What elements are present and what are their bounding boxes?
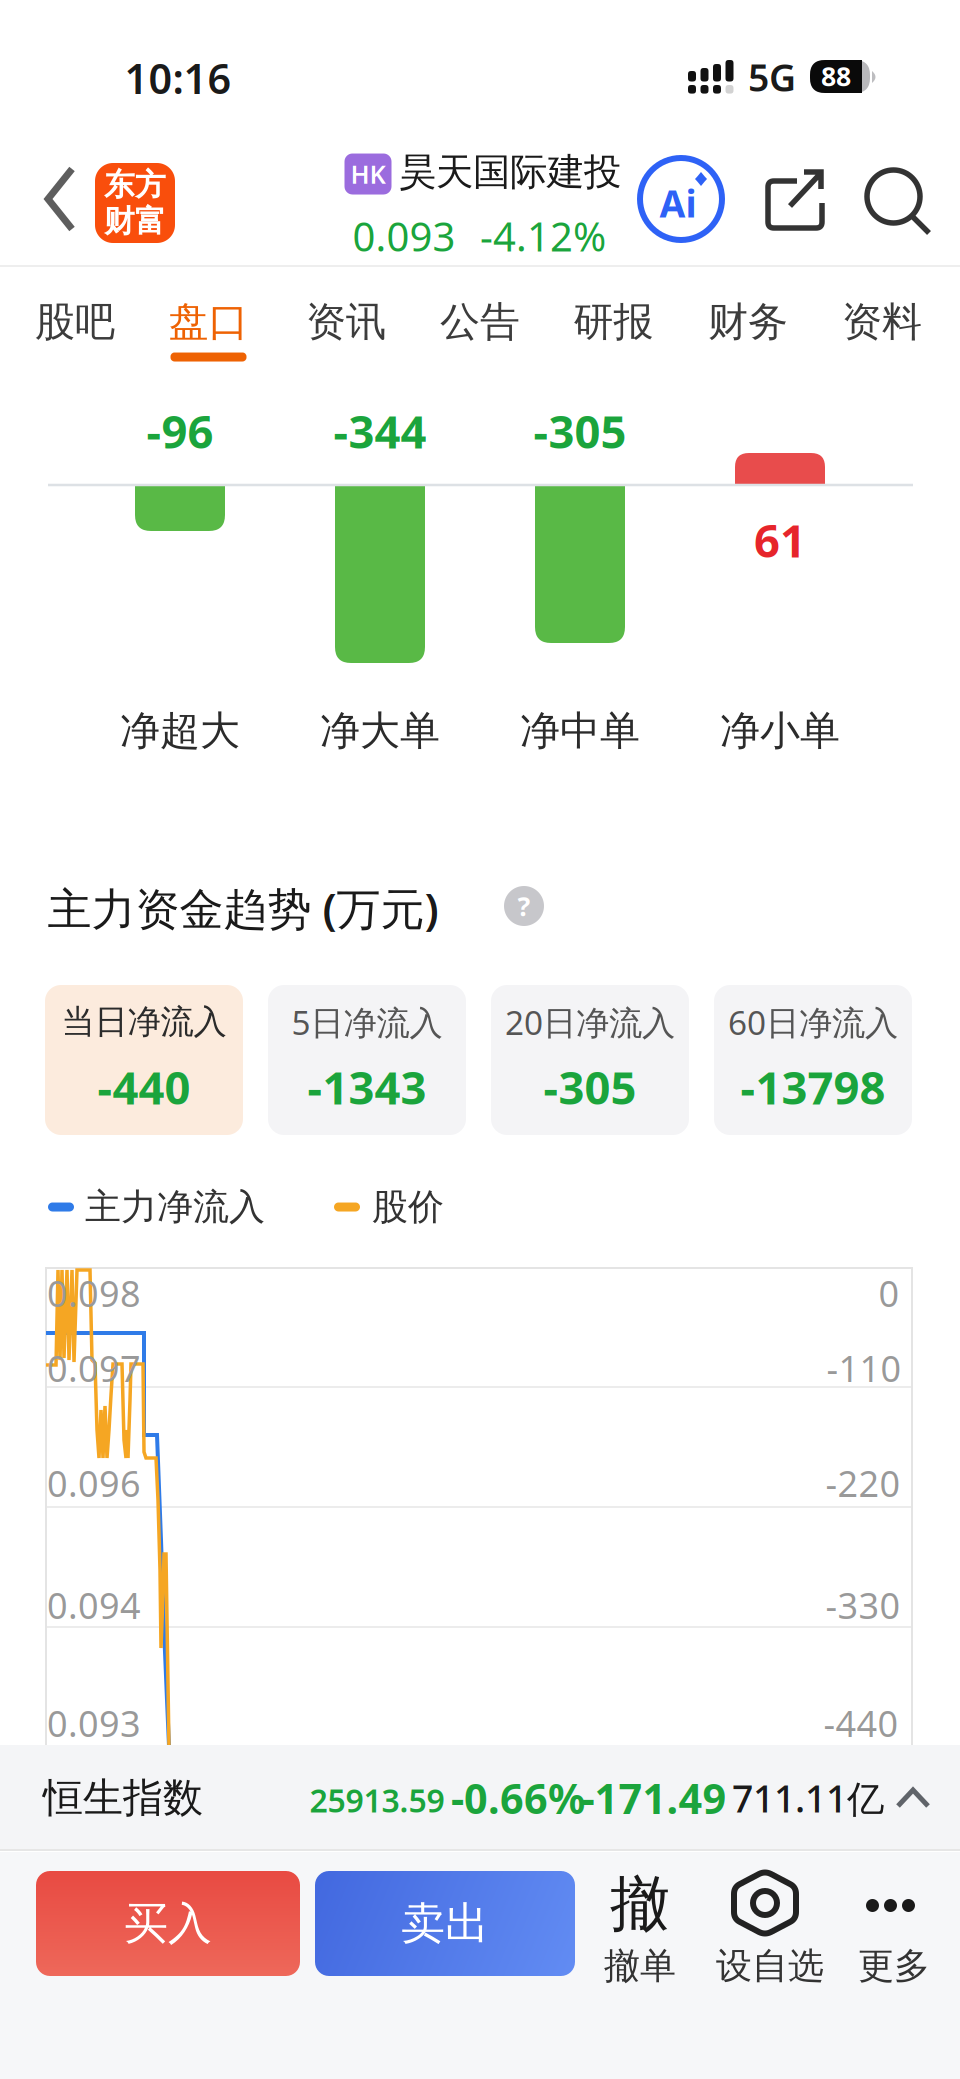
staticText: -330	[825, 1581, 900, 1629]
button[interactable]: Back	[30, 154, 90, 244]
staticText: 恒生指数	[43, 1773, 203, 1822]
staticText: 净超大	[120, 706, 240, 755]
staticText: 更多	[858, 1944, 930, 1988]
staticText: 昊天国际建投	[399, 149, 621, 195]
button[interactable]: Share	[760, 165, 830, 235]
staticText: -344	[333, 401, 426, 461]
staticText: 20日净流入	[505, 1000, 675, 1044]
staticText: 5G	[748, 52, 796, 102]
staticText: 当日净流入	[61, 1001, 226, 1042]
staticText: 资料	[842, 297, 922, 346]
button[interactable]: 财务	[688, 282, 808, 362]
staticText: 股价	[372, 1185, 444, 1229]
button[interactable]: 设自选	[695, 1861, 845, 1991]
button[interactable]: 5日净流入	[268, 985, 466, 1135]
staticText: 0	[878, 1269, 899, 1317]
staticText: -110	[826, 1344, 901, 1392]
staticText: -4.12%	[480, 209, 606, 262]
staticText: ?	[517, 888, 530, 924]
staticText: 研报	[573, 297, 653, 346]
staticText: Ai	[659, 178, 696, 228]
button[interactable]: 资料	[822, 282, 942, 362]
staticText: 股吧	[35, 297, 115, 346]
staticText: 财富	[104, 202, 166, 240]
staticText: -0.66%	[451, 1771, 585, 1825]
staticText: 0.093	[352, 209, 455, 262]
button[interactable]: 恒生指数	[0, 1745, 960, 1851]
button[interactable]: 更多	[839, 1863, 949, 1993]
button[interactable]: 股吧	[15, 282, 135, 362]
staticText: 0.093	[47, 1699, 141, 1747]
staticText: 撤	[610, 1867, 670, 1941]
button[interactable]: 帮助	[504, 886, 544, 926]
staticText: -220	[825, 1459, 900, 1507]
button[interactable]: 60日净流入	[714, 985, 912, 1135]
button[interactable]: 卖出	[315, 1871, 575, 1976]
staticText: 主力资金趋势 (万元)	[47, 879, 438, 937]
button[interactable]: 研报	[553, 282, 673, 362]
staticText: 0.097	[47, 1344, 141, 1392]
staticText: 0.094	[47, 1581, 141, 1629]
staticText: 60日净流入	[728, 1000, 898, 1044]
staticText: -96	[146, 401, 213, 461]
staticText: -440	[97, 1057, 190, 1117]
staticText: 25913.59	[309, 1779, 444, 1821]
staticText: 净中单	[520, 706, 640, 755]
staticText: 公告	[440, 297, 520, 346]
button[interactable]: 盘口	[148, 282, 268, 362]
staticText: 买入	[124, 1896, 212, 1950]
button[interactable]: 资讯	[286, 282, 406, 362]
staticText: 5日净流入	[291, 1000, 442, 1044]
staticText: 0.098	[47, 1269, 141, 1317]
staticText: -440	[823, 1699, 898, 1747]
button[interactable]: 20日净流入	[491, 985, 689, 1135]
staticText: -1343	[307, 1057, 426, 1117]
button[interactable]: 当日净流入	[45, 985, 243, 1135]
staticText: 财务	[708, 297, 788, 346]
button[interactable]: AI	[635, 153, 727, 245]
staticText: 净小单	[720, 706, 840, 755]
button[interactable]: Search	[863, 165, 933, 235]
staticText: 10:16	[124, 51, 231, 105]
staticText: 主力净流入	[85, 1185, 265, 1229]
staticText: 盘口	[168, 297, 248, 346]
button[interactable]: 撤	[580, 1863, 700, 1993]
staticText: -13798	[740, 1057, 885, 1117]
staticText: -171.49	[581, 1771, 726, 1825]
staticText: 88	[821, 58, 851, 94]
staticText: 711.11亿	[732, 1773, 884, 1823]
staticText: 卖出	[401, 1896, 489, 1950]
staticText: 撤单	[604, 1944, 676, 1988]
staticText: -305	[533, 401, 626, 461]
staticText: 资讯	[306, 297, 386, 346]
staticText: HK	[350, 157, 385, 191]
staticText: 净大单	[320, 706, 440, 755]
button[interactable]: 公告	[420, 282, 540, 362]
staticText: 东方	[104, 166, 166, 203]
staticText: 设自选	[716, 1944, 824, 1988]
staticText: -305	[543, 1057, 636, 1117]
button[interactable]: 买入	[36, 1871, 300, 1976]
staticText: 0.096	[47, 1459, 141, 1507]
staticText: 61	[754, 510, 806, 570]
